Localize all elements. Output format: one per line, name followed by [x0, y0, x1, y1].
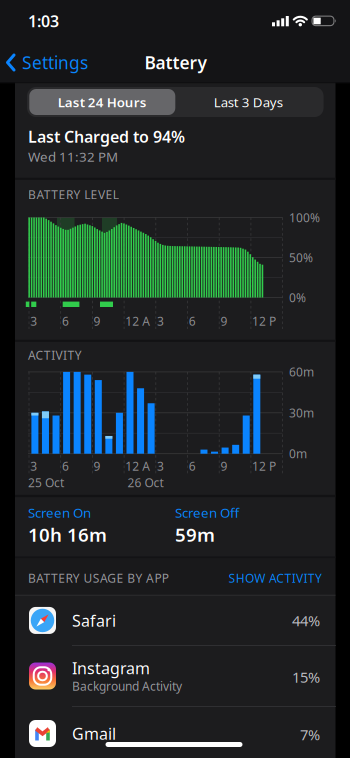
staticText: 100% — [289, 209, 320, 225]
staticText: 3 — [30, 458, 37, 474]
staticText: Settings — [22, 51, 88, 74]
staticText: Instagram — [72, 657, 150, 679]
button[interactable]: Last 3 Days — [175, 88, 321, 116]
staticText: 25 Oct — [28, 474, 64, 490]
staticText: 7% — [300, 725, 320, 744]
staticText: ACTIVITY — [28, 347, 82, 363]
staticText: Last 24 Hours — [58, 93, 147, 111]
staticText: Battery — [144, 51, 206, 74]
staticText: BATTERY LEVEL — [28, 186, 119, 202]
staticText: 60m — [289, 364, 314, 380]
staticText: Background Activity — [72, 678, 182, 694]
button[interactable]: Gmail — [15, 706, 336, 758]
staticText: BATTERY USAGE BY APP — [28, 570, 169, 586]
button[interactable]: Safari — [15, 595, 336, 645]
staticText: 59m — [175, 522, 215, 547]
staticText: 3 — [30, 313, 37, 329]
staticText: 1:03 — [28, 10, 59, 32]
staticText: 3 — [157, 313, 164, 329]
staticText: 26 Oct — [127, 474, 163, 490]
staticText: 9 — [220, 313, 227, 329]
staticText: 6 — [189, 458, 196, 474]
staticText: Last Charged to 94% — [28, 126, 185, 147]
staticText: 15% — [292, 667, 320, 687]
staticText: 9 — [94, 458, 101, 474]
staticText: 9 — [94, 313, 101, 329]
staticText: 0m — [289, 446, 307, 462]
staticText: 6 — [62, 458, 69, 474]
staticText: Last 3 Days — [214, 93, 283, 111]
staticText: 3 — [157, 458, 164, 474]
button[interactable]: Instagram — [15, 645, 336, 706]
staticText: 12 P — [252, 313, 276, 329]
staticText: 6 — [189, 313, 196, 329]
staticText: 6 — [62, 313, 69, 329]
staticText: 0% — [289, 289, 306, 305]
staticText: 9 — [220, 458, 227, 474]
staticText: Wed 11:32 PM — [28, 148, 118, 165]
staticText: 12 A — [125, 313, 150, 329]
staticText: 44% — [292, 611, 320, 630]
staticText: Gmail — [72, 723, 116, 744]
staticText: 30m — [289, 405, 314, 421]
staticText: Safari — [72, 610, 116, 631]
staticText: 50% — [289, 249, 313, 265]
staticText: Screen Off — [175, 504, 239, 521]
staticText: 12 A — [125, 458, 150, 474]
staticText: 12 P — [252, 458, 276, 474]
button[interactable]: Settings — [6, 46, 116, 78]
staticText: 10h 16m — [28, 522, 107, 547]
button[interactable]: SHOW ACTIVITY — [182, 570, 322, 586]
staticText: Screen On — [28, 504, 91, 521]
button[interactable]: Last 24 Hours — [29, 89, 175, 115]
staticText: SHOW ACTIVITY — [228, 570, 322, 586]
